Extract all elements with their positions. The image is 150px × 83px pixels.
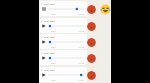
staticText: 0:07 bbox=[51, 46, 56, 49]
button[interactable]: Ivan Ivan bbox=[40, 18, 87, 33]
button[interactable]: Seek bbox=[48, 24, 84, 28]
staticText: 12:45 bbox=[40, 46, 84, 49]
button[interactable]: Play bbox=[42, 24, 46, 28]
button[interactable]: Contact avatar bbox=[87, 71, 96, 80]
staticText: 0:07 bbox=[51, 30, 56, 33]
staticText: Ivan Ivan bbox=[44, 2, 55, 5]
button[interactable]: Contact avatar bbox=[87, 54, 96, 63]
button[interactable]: Ivan Ivan bbox=[40, 50, 87, 65]
button[interactable]: Play bbox=[42, 56, 46, 60]
staticText: 12:45 bbox=[40, 30, 84, 33]
staticText: 0:07 bbox=[51, 62, 56, 65]
staticText: 12:45 bbox=[40, 13, 84, 16]
button[interactable]: Ivan Ivan bbox=[40, 1, 87, 16]
button[interactable]: Seek bbox=[48, 56, 84, 60]
staticText: 0:07 bbox=[51, 79, 56, 82]
button[interactable]: Contact avatar bbox=[87, 38, 96, 47]
staticText: 12:45 bbox=[40, 79, 84, 82]
button[interactable]: Ivan Ivan bbox=[40, 34, 87, 49]
button[interactable]: Play bbox=[42, 73, 46, 77]
button[interactable]: Seek bbox=[48, 7, 84, 11]
staticText: Ivan Ivan bbox=[44, 68, 55, 71]
button[interactable]: Contact avatar bbox=[87, 22, 96, 31]
button[interactable]: Seek bbox=[48, 73, 84, 77]
button[interactable]: Ivan Ivan bbox=[40, 67, 87, 82]
staticText: 0:07 bbox=[51, 13, 56, 16]
staticText: Ivan Ivan bbox=[44, 19, 55, 22]
staticText: Ivan Ivan bbox=[44, 35, 55, 38]
staticText: Ivan Ivan bbox=[44, 51, 55, 54]
button[interactable]: Pause bbox=[42, 7, 46, 11]
staticText: 12:45 bbox=[40, 62, 84, 65]
button[interactable]: Laughing reaction bbox=[100, 4, 111, 15]
button[interactable]: Play bbox=[42, 40, 46, 44]
button[interactable]: Seek bbox=[48, 40, 84, 44]
button[interactable]: Contact avatar bbox=[87, 5, 96, 14]
